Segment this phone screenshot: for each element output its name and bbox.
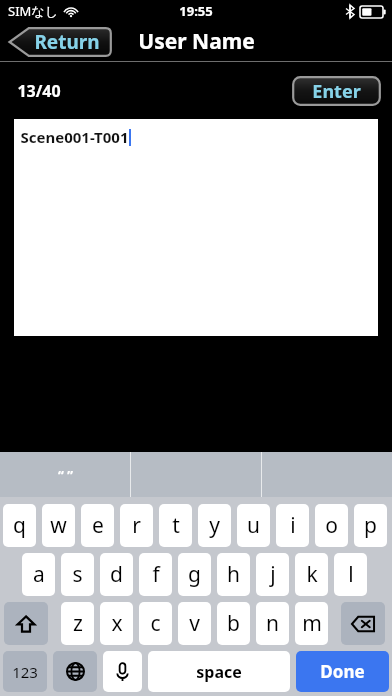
staticText: w: [50, 511, 67, 540]
button[interactable]: m: [295, 602, 328, 645]
button[interactable]: t: [159, 504, 192, 547]
staticText: p: [364, 511, 377, 540]
button[interactable]: p: [354, 504, 387, 547]
staticText: v: [189, 609, 200, 638]
button[interactable]: z: [61, 602, 94, 645]
button[interactable]: u: [237, 504, 270, 547]
staticText: g: [188, 560, 201, 589]
button[interactable]: Enter: [292, 76, 381, 106]
button[interactable]: Shift: [4, 602, 48, 645]
button[interactable]: i: [276, 504, 309, 547]
button[interactable]: y: [198, 504, 231, 547]
staticText: j: [270, 560, 276, 589]
staticText: b: [227, 609, 240, 638]
button[interactable]: 123: [3, 651, 47, 692]
button[interactable]: f: [139, 553, 172, 596]
button[interactable]: “ ”: [0, 452, 130, 497]
button[interactable]: Change keyboard: [53, 651, 97, 692]
staticText: 13/40: [17, 80, 61, 102]
button[interactable]: Done: [296, 651, 389, 692]
button[interactable]: l: [334, 553, 367, 596]
button[interactable]: Backspace: [341, 602, 385, 645]
staticText: z: [73, 609, 83, 638]
staticText: f: [152, 560, 160, 589]
button[interactable]: j: [256, 553, 289, 596]
button[interactable]: s: [61, 553, 94, 596]
staticText: r: [132, 511, 141, 540]
button[interactable]: o: [315, 504, 348, 547]
staticText: Scene001-T001: [20, 127, 129, 147]
staticText: Done: [320, 660, 365, 683]
staticText: SIMなし: [8, 2, 58, 20]
button[interactable]: Return: [8, 27, 112, 57]
staticText: h: [227, 560, 240, 589]
staticText: i: [290, 511, 296, 540]
staticText: t: [172, 511, 180, 540]
button[interactable]: a: [22, 553, 55, 596]
staticText: q: [13, 511, 26, 540]
button[interactable]: g: [178, 553, 211, 596]
staticText: Enter: [312, 79, 361, 104]
staticText: n: [266, 609, 279, 638]
button[interactable]: q: [3, 504, 36, 547]
staticText: x: [111, 609, 123, 638]
button[interactable]: space: [148, 651, 290, 692]
staticText: l: [348, 560, 354, 589]
staticText: m: [302, 609, 322, 638]
staticText: s: [72, 560, 83, 589]
staticText: 19:55: [179, 2, 213, 20]
button[interactable]: b: [217, 602, 250, 645]
staticText: u: [247, 511, 260, 540]
button[interactable]: k: [295, 553, 328, 596]
staticText: Return: [34, 29, 100, 55]
button[interactable]: v: [178, 602, 211, 645]
button[interactable]: x: [100, 602, 133, 645]
staticText: “ ”: [58, 466, 73, 484]
button[interactable]: d: [100, 553, 133, 596]
staticText: o: [325, 511, 338, 540]
staticText: a: [33, 560, 45, 589]
button[interactable]: n: [256, 602, 289, 645]
button[interactable]: r: [120, 504, 153, 547]
staticText: 123: [12, 662, 38, 682]
button[interactable]: e: [81, 504, 114, 547]
staticText: c: [150, 609, 161, 638]
button[interactable]: Scene001-T001: [14, 119, 378, 336]
staticText: y: [209, 511, 220, 540]
button[interactable]: w: [42, 504, 75, 547]
staticText: k: [306, 560, 318, 589]
staticText: d: [110, 560, 123, 589]
staticText: User Name: [138, 27, 255, 56]
button[interactable]: Dictation: [103, 651, 142, 692]
button[interactable]: h: [217, 553, 250, 596]
staticText: e: [92, 511, 104, 540]
button[interactable]: c: [139, 602, 172, 645]
staticText: space: [196, 661, 242, 683]
